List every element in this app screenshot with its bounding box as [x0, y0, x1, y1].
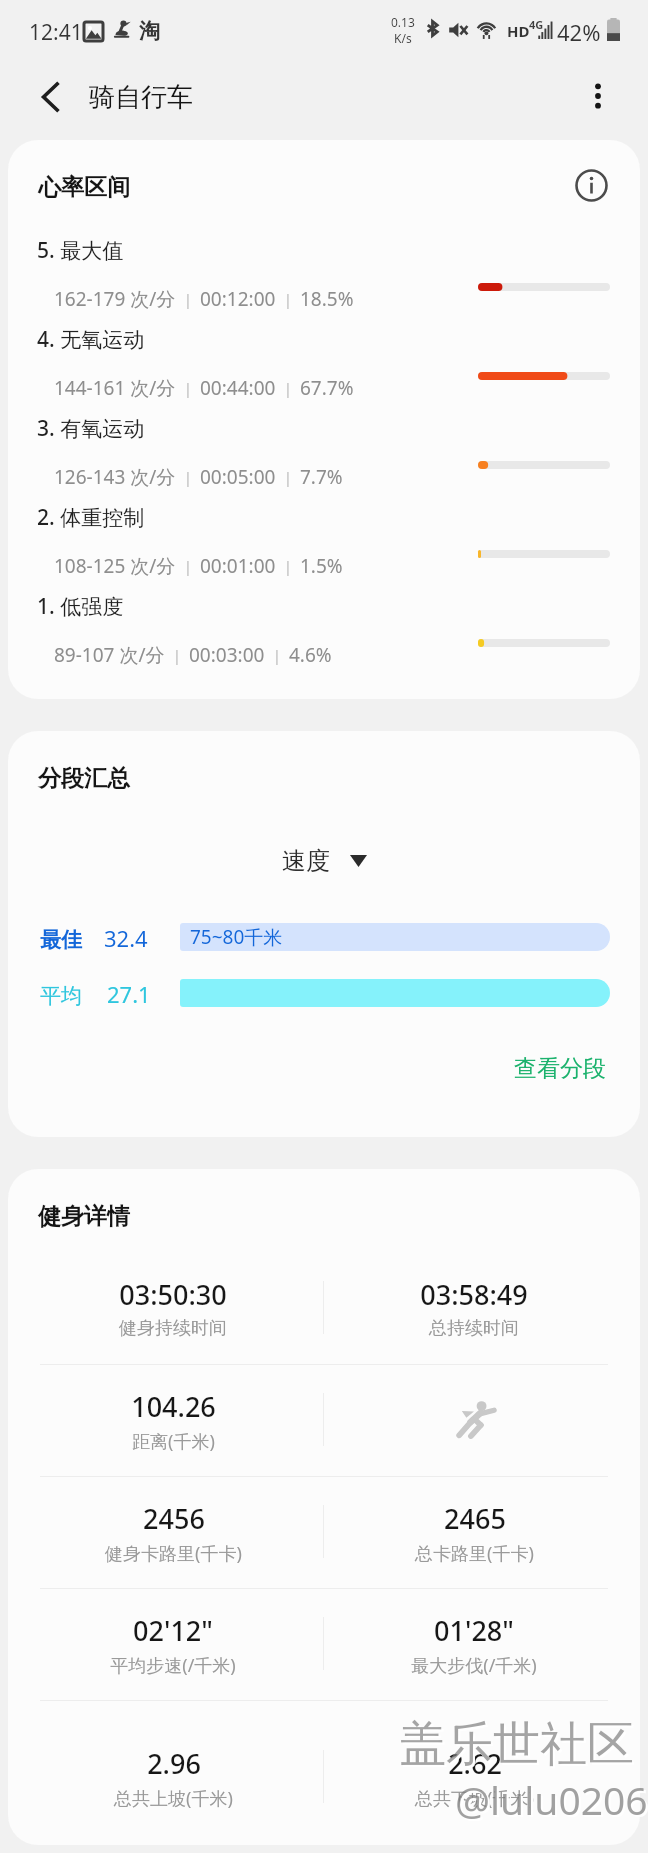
staticText: |	[276, 467, 300, 487]
staticText: 02'12"	[133, 1612, 213, 1649]
staticText: 距离(千米)	[132, 1429, 215, 1454]
staticText: 32.4	[104, 923, 148, 953]
button[interactable]: 4. 无氧运动	[8, 321, 640, 410]
staticText: 1.5%	[300, 553, 343, 579]
staticText: 75~80千米	[190, 924, 283, 950]
button[interactable]: Back	[27, 73, 75, 121]
staticText: |	[176, 378, 200, 398]
staticText: 总持续时间	[429, 1317, 519, 1340]
staticText: 健身卡路里(千卡)	[105, 1541, 242, 1566]
staticText: 最大步伐(/千米)	[411, 1653, 537, 1678]
staticText: 骑自行车	[89, 81, 193, 114]
staticText: 心率区间	[38, 173, 130, 202]
staticText: 查看分段	[514, 1054, 606, 1083]
staticText: 01'28"	[434, 1612, 514, 1649]
staticText: 18.5%	[300, 286, 354, 312]
staticText: |	[176, 467, 200, 487]
staticText: 盖乐世社区	[399, 1715, 634, 1774]
staticText: 最佳	[40, 927, 82, 953]
staticText: 4. 无氧运动	[37, 325, 145, 354]
staticText: 0.13	[391, 14, 415, 30]
staticText: 健身持续时间	[119, 1317, 227, 1340]
staticText: 2456	[143, 1500, 205, 1537]
staticText: 89-107 次/分	[54, 642, 165, 668]
staticText: 3. 有氧运动	[37, 414, 145, 443]
staticText: K/s	[394, 30, 412, 46]
staticText: 7.7%	[300, 464, 343, 490]
staticText: 67.7%	[300, 375, 354, 401]
staticText: 00:44:00	[200, 375, 276, 401]
staticText: 2. 体重控制	[37, 503, 145, 532]
button[interactable]: 2. 体重控制	[8, 499, 640, 588]
staticText: 104.26	[131, 1388, 216, 1425]
staticText: 27.1	[107, 979, 151, 1009]
staticText: 00:05:00	[200, 464, 276, 490]
staticText: 03:50:30	[119, 1276, 227, 1313]
button[interactable]: 5. 最大值	[8, 232, 640, 321]
staticText: 2465	[444, 1500, 506, 1537]
staticText: HD	[507, 21, 530, 41]
staticText: 03:58:49	[420, 1276, 528, 1313]
staticText: 淘	[139, 18, 160, 44]
staticText: 总共上坡(千米)	[114, 1786, 233, 1811]
staticText: |	[176, 289, 200, 309]
staticText: 平均步速(/千米)	[110, 1653, 236, 1678]
staticText: 总共下坡(千米)	[415, 1786, 534, 1811]
button[interactable]: Info	[568, 162, 614, 208]
staticText: @lulu0206	[455, 1773, 648, 1826]
button[interactable]: 速度	[8, 841, 640, 881]
staticText: 00:03:00	[189, 642, 265, 668]
staticText: 平均	[40, 983, 82, 1009]
staticText: |	[165, 645, 189, 665]
staticText: 42%	[557, 17, 601, 47]
staticText: 4G	[529, 17, 544, 32]
staticText: 盖乐世社区	[401, 1717, 636, 1776]
staticText: 144-161 次/分	[54, 375, 176, 401]
staticText: |	[276, 556, 300, 576]
staticText: 速度	[282, 846, 330, 876]
staticText: 5. 最大值	[37, 236, 124, 265]
staticText: 4.6%	[289, 642, 332, 668]
staticText: 健身详情	[38, 1202, 130, 1231]
button[interactable]: 75~80千米	[180, 923, 610, 951]
staticText: 1. 低强度	[37, 592, 124, 621]
button[interactable]	[180, 979, 610, 1007]
staticText: |	[276, 378, 300, 398]
staticText: 00:01:00	[200, 553, 276, 579]
staticText: 2.62	[448, 1745, 502, 1782]
staticText: 126-143 次/分	[54, 464, 176, 490]
staticText: 分段汇总	[38, 764, 130, 793]
staticText: 2.96	[147, 1745, 201, 1782]
staticText: |	[276, 289, 300, 309]
button[interactable]: 1. 低强度	[8, 588, 640, 677]
button[interactable]: 查看分段	[514, 1054, 606, 1083]
button[interactable]: 3. 有氧运动	[8, 410, 640, 499]
staticText: |	[176, 556, 200, 576]
button[interactable]: More options	[574, 72, 622, 120]
staticText: 00:12:00	[200, 286, 276, 312]
staticText: |	[265, 645, 289, 665]
staticText: 总卡路里(千卡)	[415, 1541, 534, 1566]
staticText: 108-125 次/分	[54, 553, 176, 579]
staticText: 12:41	[29, 18, 83, 47]
staticText: @lulu0206	[457, 1775, 648, 1828]
staticText: 162-179 次/分	[54, 286, 176, 312]
